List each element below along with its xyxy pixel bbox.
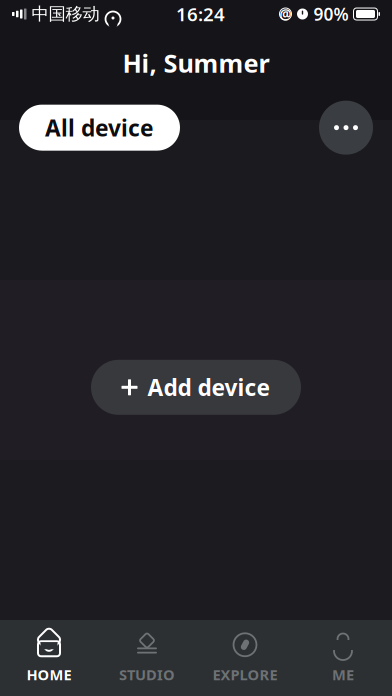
staticText: 90% — [313, 2, 348, 25]
staticText: 中国移动 — [31, 3, 99, 25]
button[interactable]: HOME — [0, 620, 98, 696]
button[interactable]: EXPLORE — [196, 620, 294, 696]
staticText: HOME — [26, 665, 71, 684]
staticText: All device — [45, 113, 154, 143]
button[interactable]: ME — [294, 620, 392, 696]
staticText: @ — [279, 5, 291, 23]
staticText: Hi, Summer — [122, 46, 269, 80]
staticText: EXPLORE — [212, 665, 277, 684]
staticText: ME — [332, 665, 354, 684]
staticText: 16:24 — [176, 2, 225, 26]
button[interactable]: Add device — [91, 360, 301, 415]
button[interactable]: All device — [19, 105, 180, 151]
button[interactable]: STUDIO — [98, 620, 196, 696]
staticText: Add device — [147, 372, 270, 402]
staticText: STUDIO — [119, 665, 175, 684]
button[interactable]: More options — [319, 101, 373, 155]
